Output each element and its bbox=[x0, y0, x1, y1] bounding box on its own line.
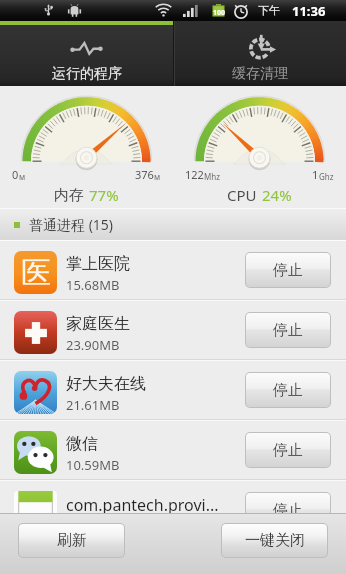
staticText: 23.90MB bbox=[66, 336, 120, 354]
staticText: 10.59MB bbox=[66, 456, 120, 474]
button[interactable]: 停止 bbox=[246, 373, 330, 407]
staticText: 122 bbox=[185, 167, 204, 182]
staticText: Ghz bbox=[319, 171, 334, 182]
staticText: 21.61MB bbox=[66, 396, 120, 414]
staticText: 运行的程序 bbox=[52, 65, 122, 83]
staticText: м bbox=[19, 171, 26, 182]
staticText: 一键关闭 bbox=[245, 531, 305, 550]
button[interactable]: 医 bbox=[0, 241, 346, 299]
button[interactable]: 刷新 bbox=[19, 524, 124, 557]
button[interactable]: 缓存清理 bbox=[173, 21, 346, 86]
button[interactable]: 好大夫在线 bbox=[0, 361, 346, 419]
button[interactable]: 运行的程序 bbox=[0, 21, 173, 86]
staticText: 停止 bbox=[273, 381, 303, 400]
button[interactable]: 一键关闭 bbox=[222, 524, 327, 557]
staticText: 家庭医生 bbox=[66, 314, 130, 334]
staticText: 掌上医院 bbox=[66, 254, 130, 274]
button[interactable]: com.pantech.provi... bbox=[0, 481, 346, 539]
staticText: 好大夫在线 bbox=[66, 374, 146, 394]
staticText: 15.68MB bbox=[66, 276, 120, 294]
staticText: 微信 bbox=[66, 434, 98, 454]
staticText: 77% bbox=[89, 185, 119, 205]
staticText: CPU bbox=[227, 185, 257, 205]
staticText: 停止 bbox=[273, 321, 303, 340]
staticText: 100 bbox=[213, 8, 226, 18]
staticText: 1 bbox=[312, 167, 319, 182]
staticText: 11:36 bbox=[292, 2, 326, 20]
button[interactable]: 停止 bbox=[246, 433, 330, 467]
staticText: 0 bbox=[12, 167, 19, 182]
staticText: 缓存清理 bbox=[232, 65, 288, 83]
button[interactable]: 家庭医生 bbox=[0, 301, 346, 359]
button[interactable]: 停止 bbox=[246, 253, 330, 287]
staticText: м bbox=[154, 171, 161, 182]
staticText: 普通进程 (15) bbox=[29, 215, 114, 234]
button[interactable]: 停止 bbox=[246, 493, 330, 527]
staticText: 376 bbox=[135, 167, 154, 182]
staticText: 医 bbox=[21, 254, 51, 292]
staticText: 24% bbox=[262, 185, 292, 205]
staticText: 停止 bbox=[273, 261, 303, 280]
staticText: Mhz bbox=[204, 171, 220, 182]
staticText: com.pantech.provi... bbox=[66, 494, 219, 516]
staticText: 下午 bbox=[258, 3, 280, 17]
staticText: 刷新 bbox=[57, 531, 87, 550]
staticText: 停止 bbox=[273, 501, 303, 520]
staticText: 内存 bbox=[54, 186, 84, 205]
button[interactable]: 停止 bbox=[246, 313, 330, 347]
button[interactable]: 微信 bbox=[0, 421, 346, 479]
staticText: 停止 bbox=[273, 441, 303, 460]
